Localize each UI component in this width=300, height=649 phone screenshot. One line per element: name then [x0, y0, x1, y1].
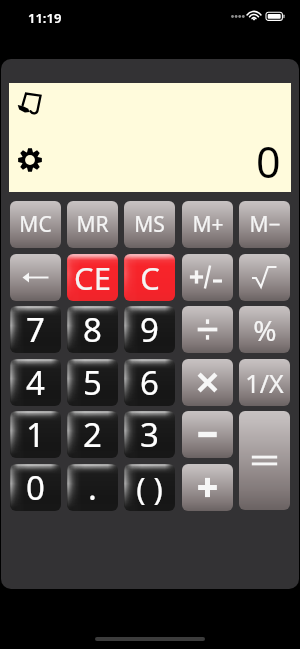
staticText: M+	[192, 210, 224, 239]
staticText: MS	[134, 210, 165, 239]
button[interactable]: %	[239, 306, 290, 353]
button[interactable]: Plus minus	[182, 254, 233, 301]
staticText: 2	[83, 412, 102, 457]
staticText: MR	[76, 210, 109, 239]
button[interactable]: MR	[67, 201, 118, 248]
staticText: 1	[26, 412, 45, 457]
button[interactable]: MS	[124, 201, 175, 248]
button[interactable]: 8	[67, 306, 118, 353]
button[interactable]: M−	[239, 201, 290, 248]
button[interactable]: Backspace	[10, 254, 61, 301]
staticText: %	[253, 311, 277, 349]
staticText: 3	[140, 412, 159, 457]
staticText: 6	[140, 360, 159, 405]
button[interactable]: 9	[124, 306, 175, 353]
staticText: 0	[256, 132, 281, 191]
staticText: 1/X	[245, 366, 284, 400]
staticText: C	[140, 257, 160, 299]
staticText: 11:19	[28, 9, 62, 27]
button[interactable]: 1/X	[239, 359, 290, 406]
button[interactable]: 7	[10, 306, 61, 353]
button[interactable]: Equals	[239, 411, 290, 510]
button[interactable]: 6	[124, 359, 175, 406]
button[interactable]: Plus	[182, 464, 233, 511]
button[interactable]: Multiply	[182, 359, 233, 406]
button[interactable]: .	[67, 464, 118, 511]
button[interactable]: Divide	[182, 306, 233, 353]
button[interactable]: Minus	[182, 411, 233, 458]
button[interactable]: CE	[67, 254, 118, 301]
button[interactable]: Memory note	[17, 93, 41, 114]
staticText: ( )	[136, 467, 163, 509]
button[interactable]: Square root	[239, 254, 290, 301]
staticText: CE	[74, 257, 111, 299]
button[interactable]: 1	[10, 411, 61, 458]
button[interactable]: Settings	[18, 148, 42, 172]
button[interactable]: MC	[10, 201, 61, 248]
button[interactable]: Memory note	[9, 83, 291, 192]
staticText: MC	[19, 210, 52, 239]
button[interactable]: 5	[67, 359, 118, 406]
staticText: 4	[26, 360, 45, 405]
staticText: 9	[140, 307, 159, 352]
button[interactable]: 2	[67, 411, 118, 458]
staticText: .	[88, 465, 97, 510]
staticText: 0	[26, 465, 45, 510]
staticText: 8	[83, 307, 102, 352]
button[interactable]: 4	[10, 359, 61, 406]
staticText: 7	[26, 307, 45, 352]
button[interactable]: 3	[124, 411, 175, 458]
staticText: M−	[249, 210, 281, 239]
button[interactable]: M+	[182, 201, 233, 248]
button[interactable]: 0	[10, 464, 61, 511]
staticText: 5	[83, 360, 102, 405]
button[interactable]: C	[124, 254, 175, 301]
button[interactable]: ( )	[124, 464, 175, 511]
